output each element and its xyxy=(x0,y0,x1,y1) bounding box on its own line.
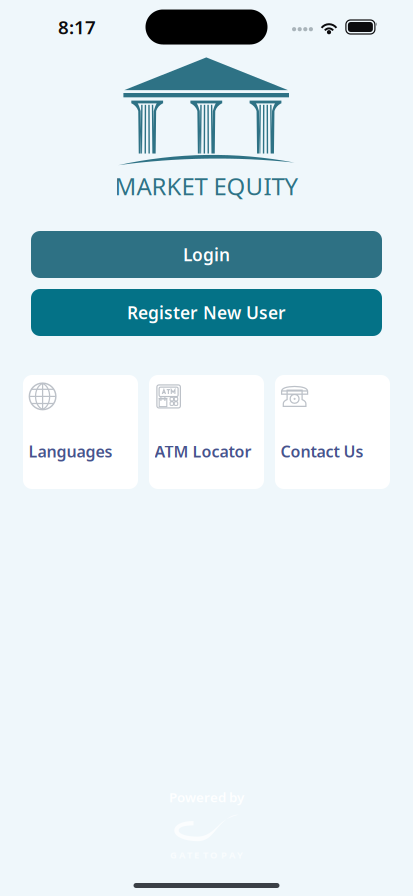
staticText: 8:17 xyxy=(58,15,96,39)
button[interactable]: ATM Locator xyxy=(149,375,264,489)
staticText: ATM Locator xyxy=(155,441,252,462)
staticText: Powered by xyxy=(169,788,244,806)
staticText: MARKET EQUITY xyxy=(114,170,298,202)
button[interactable]: Contact Us xyxy=(275,375,390,489)
staticText: Languages xyxy=(29,441,113,462)
staticText: Login xyxy=(183,243,230,266)
button[interactable]: Languages xyxy=(23,375,138,489)
button[interactable]: Register New User xyxy=(31,289,382,336)
staticText: Register New User xyxy=(127,301,286,324)
staticText: Contact Us xyxy=(281,441,364,462)
button[interactable]: Login xyxy=(31,231,382,278)
